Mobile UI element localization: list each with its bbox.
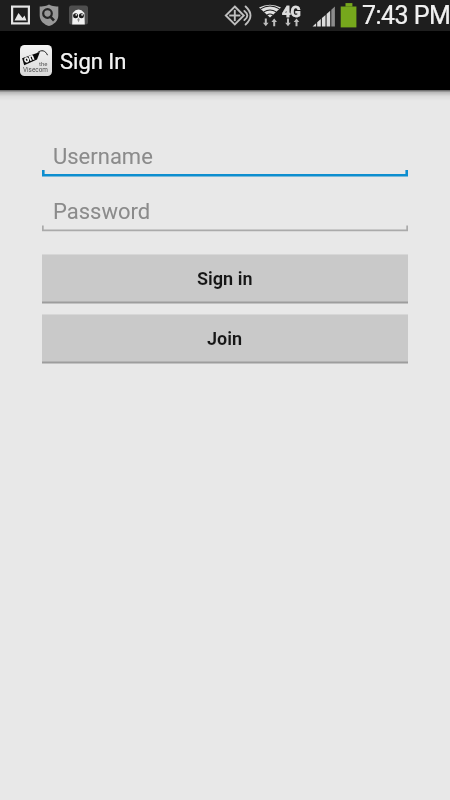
staticText: Visecom [23,66,48,74]
staticText: Username [53,144,153,170]
staticText: 4G [282,3,301,21]
button[interactable]: Password [42,195,408,231]
staticText: on [22,51,37,66]
button[interactable]: Join [42,314,408,363]
button[interactable]: Sign in [42,254,408,303]
staticText: Sign in [197,268,253,289]
button[interactable]: On the Visecom home [0,31,150,90]
staticText: Sign In [60,49,127,75]
staticText: Password [53,199,151,225]
staticText: 7:43 PM [362,1,450,30]
staticText: Join [207,328,243,349]
staticText: the [39,60,48,67]
button[interactable]: Username [42,140,408,176]
